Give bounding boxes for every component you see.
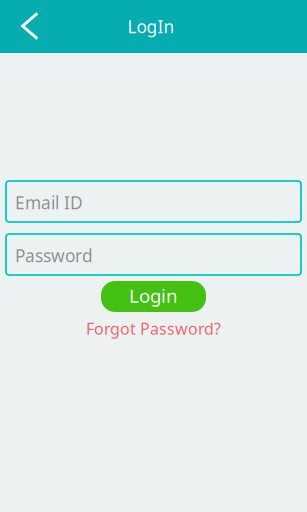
staticText: Password [15,244,93,267]
staticText: Login [129,283,178,308]
staticText: Email ID [15,191,83,214]
button[interactable]: Login [101,281,206,312]
button[interactable]: Forgot Password? [86,312,221,339]
staticText: LogIn [127,15,174,38]
staticText: Forgot Password? [86,318,221,339]
button[interactable]: Back [0,0,52,53]
